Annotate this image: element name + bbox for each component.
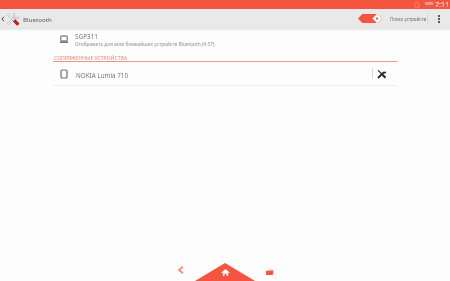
staticText: 98% [425, 1, 434, 7]
button[interactable]: Bluetooth on [356, 9, 384, 28]
other: Back [1, 16, 4, 22]
button[interactable]: Recent apps [262, 267, 278, 281]
button[interactable] [0, 63, 450, 86]
staticText: SGP311 [75, 32, 98, 41]
staticText: Bluetooth [23, 15, 52, 23]
staticText: NOKIA Lumia 710 [76, 71, 129, 80]
button[interactable]: Поиск устройств [388, 9, 429, 28]
button[interactable]: Back [0, 12, 54, 26]
button[interactable]: Device settings [373, 63, 397, 86]
staticText: Поиск устройств [390, 16, 427, 22]
button[interactable]: More options [428, 9, 450, 28]
button[interactable]: SGP311 [0, 31, 450, 49]
button[interactable]: Home [195, 263, 255, 281]
staticText: СОПРЯЖЕННЫЕ УСТРОЙСТВА [54, 55, 128, 62]
staticText: Отображать для всех ближайших устройств … [75, 41, 215, 48]
button[interactable]: Back [171, 261, 189, 279]
staticText: 7:11 [435, 0, 450, 8]
